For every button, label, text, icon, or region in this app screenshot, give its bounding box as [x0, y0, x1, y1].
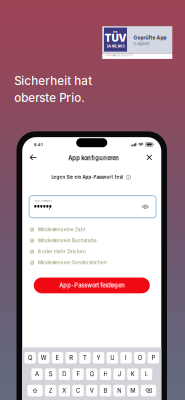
staticText: tuev-saar.de/pruefnr: [105, 54, 133, 57]
staticText: M: [130, 387, 135, 394]
staticText: K: [131, 371, 135, 378]
button[interactable]: N: [113, 385, 125, 396]
button[interactable]: Z: [45, 385, 56, 396]
staticText: Mindestens ein Sonderzeichen: [38, 260, 107, 265]
button[interactable]: I: [120, 352, 132, 364]
staticText: 5-quellen: [133, 42, 149, 46]
staticText: Geprüfte App: [133, 35, 166, 41]
button[interactable]: K: [127, 368, 138, 380]
button[interactable]: M: [127, 385, 139, 396]
staticText: Q: [28, 354, 32, 361]
button[interactable]: P: [148, 352, 159, 364]
button[interactable]: App-Passwort festlegen: [34, 277, 150, 293]
button[interactable]: R: [65, 352, 77, 364]
button[interactable]: Zurück: [26, 151, 41, 164]
staticText: App-Passwort: [34, 199, 52, 202]
button[interactable]: U: [107, 352, 118, 364]
staticText: E: [55, 354, 59, 361]
staticText: J: [118, 371, 121, 378]
staticText: SAARLAND: [106, 44, 124, 48]
staticText: H: [103, 371, 107, 378]
staticText: I: [125, 354, 127, 361]
staticText: S: [49, 371, 53, 378]
staticText: B: [103, 387, 107, 394]
staticText: App konfigurieren: [68, 155, 119, 162]
staticText: D: [62, 371, 66, 378]
staticText: TÜV: [104, 32, 126, 44]
staticText: L: [145, 371, 148, 378]
button[interactable]: E: [52, 352, 63, 364]
button[interactable]: A: [31, 368, 43, 380]
button[interactable]: F: [72, 368, 84, 380]
staticText: F: [76, 371, 79, 378]
button[interactable]: S: [45, 368, 56, 380]
button[interactable]: H: [100, 368, 111, 380]
staticText: Legen Sie ein App-Passwort fest: [51, 175, 123, 180]
button[interactable]: B: [100, 385, 111, 396]
staticText: N: [117, 387, 121, 394]
button[interactable]: Schließen: [142, 151, 157, 164]
staticText: oberste Prio.: [14, 91, 85, 105]
staticText: C: [76, 387, 80, 394]
button[interactable]: T: [79, 352, 91, 364]
button[interactable]: G: [86, 368, 97, 380]
button[interactable]: D: [59, 368, 70, 380]
staticText: W: [41, 354, 47, 361]
button[interactable]: L: [141, 368, 152, 380]
button[interactable]: Y: [93, 352, 104, 364]
button[interactable]: V: [86, 385, 97, 396]
button[interactable]: O: [134, 352, 145, 364]
staticText: Z: [49, 387, 53, 394]
staticText: O: [138, 354, 142, 361]
button[interactable]: J: [113, 368, 125, 380]
staticText: A: [35, 371, 39, 378]
staticText: T: [83, 354, 87, 361]
staticText: 9:41: [34, 142, 43, 147]
staticText: App-Passwort festlegen: [59, 282, 124, 289]
staticText: R: [69, 354, 73, 361]
button[interactable]: ⇧: [27, 385, 43, 396]
button[interactable]: W: [38, 352, 49, 364]
button[interactable]: X: [59, 385, 70, 396]
button[interactable]: C: [72, 385, 84, 396]
staticText: Mindestens eine Zahl: [38, 227, 85, 232]
button[interactable]: ⌫: [141, 385, 156, 396]
staticText: Sicherheit hat: [14, 74, 92, 88]
staticText: 8 oder mehr Zeichen: [38, 249, 86, 254]
staticText: U: [110, 354, 114, 361]
button[interactable]: Q: [24, 352, 36, 364]
staticText: Mindestens ein Buchstabe: [38, 238, 97, 243]
staticText: V: [90, 387, 94, 394]
staticText: X: [62, 387, 66, 394]
staticText: G: [90, 371, 94, 378]
staticText: ⌫: [145, 387, 152, 394]
staticText: ⇧: [32, 387, 38, 394]
staticText: Y: [97, 354, 101, 361]
staticText: ●●●●●●: [34, 205, 52, 208]
staticText: P: [151, 354, 155, 361]
